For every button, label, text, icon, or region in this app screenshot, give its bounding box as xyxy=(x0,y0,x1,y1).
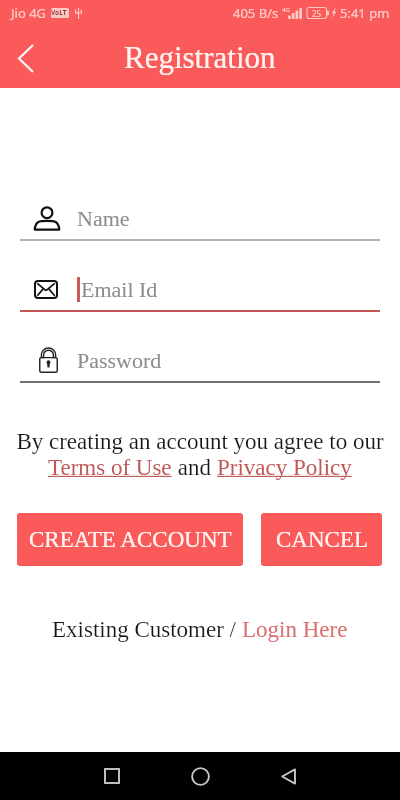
staticText: Name xyxy=(77,206,130,230)
staticText: By creating an account you agree to our xyxy=(0,429,400,454)
staticText: VoLTE xyxy=(51,8,69,18)
button[interactable]: Login Here xyxy=(242,617,348,642)
staticText: Password xyxy=(77,348,162,372)
staticText: Registration xyxy=(124,40,276,74)
staticText: CREATE ACCOUNT xyxy=(29,527,232,552)
staticText: Jio 4G xyxy=(11,4,47,22)
button[interactable]: Privacy Policy xyxy=(217,455,352,480)
staticText: and xyxy=(172,455,217,480)
button[interactable]: Recents xyxy=(88,752,136,800)
button[interactable]: CREATE ACCOUNT xyxy=(17,513,243,566)
button[interactable]: CANCEL xyxy=(261,513,382,566)
staticText: 5:41 pm xyxy=(340,4,390,22)
staticText: 4G xyxy=(282,6,290,14)
button[interactable]: Home xyxy=(176,752,224,800)
staticText: 405 B/s xyxy=(233,4,279,22)
staticText: Existing Customer / xyxy=(52,617,242,642)
button[interactable]: Back xyxy=(2,34,50,82)
staticText: Email Id xyxy=(81,277,158,301)
staticText: CANCEL xyxy=(276,527,368,552)
button[interactable]: Terms of Use xyxy=(48,455,172,480)
button[interactable]: Back xyxy=(264,752,312,800)
staticText: 25 xyxy=(312,8,322,19)
